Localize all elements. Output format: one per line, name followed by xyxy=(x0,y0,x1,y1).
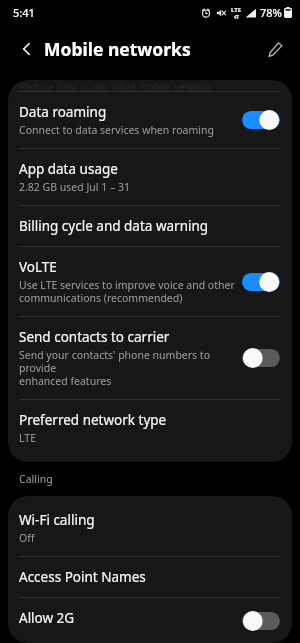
button[interactable]: Access Point Names xyxy=(8,557,292,597)
staticText: Mobile networks xyxy=(44,37,191,61)
staticText: Allow 2G xyxy=(19,609,75,627)
staticText: Data roaming xyxy=(19,103,107,121)
staticText: Send contacts to carrier xyxy=(19,328,170,346)
staticText: Billing cycle and data warning xyxy=(19,217,209,235)
button[interactable]: Data roaming xyxy=(8,92,292,148)
staticText: LTE xyxy=(19,431,36,445)
staticText: Reduce data usage while mobile network xyxy=(19,80,212,91)
button[interactable]: Off xyxy=(242,610,280,632)
staticText: Calling xyxy=(19,472,53,486)
staticText: LTE xyxy=(231,6,242,14)
staticText: Connect to data services when roaming xyxy=(19,123,214,137)
button[interactable]: On xyxy=(242,271,280,293)
staticText: VoLTE xyxy=(19,258,57,276)
button[interactable]: On xyxy=(242,109,280,131)
button[interactable]: Preferred network type xyxy=(8,400,292,456)
button[interactable]: Off xyxy=(242,347,280,369)
button[interactable]: Send contacts to carrier xyxy=(8,317,292,399)
staticText: Send your contacts' phone numbers to pro… xyxy=(19,348,242,388)
button[interactable]: VoLTE xyxy=(8,247,292,316)
staticText: 4T xyxy=(234,14,240,20)
button[interactable]: Billing cycle and data warning xyxy=(8,206,292,246)
button[interactable]: Reduce data usage while mobile network xyxy=(8,80,292,91)
staticText: 78% xyxy=(260,5,282,20)
button[interactable]: Allow 2G xyxy=(8,598,292,643)
staticText: 5:41 xyxy=(13,5,35,20)
staticText: Access Point Names xyxy=(19,568,146,586)
staticText: Preferred network type xyxy=(19,411,167,429)
staticText: Wi-Fi calling xyxy=(19,511,95,529)
button[interactable]: App data usage xyxy=(8,149,292,205)
staticText: Use LTE services to improve voice and ot… xyxy=(19,278,235,305)
staticText: 2.82 GB used Jul 1 – 31 xyxy=(19,180,130,194)
staticText: App data usage xyxy=(19,160,118,178)
button[interactable]: Edit xyxy=(260,34,290,64)
button[interactable]: Back xyxy=(12,34,42,64)
staticText: Off xyxy=(19,531,35,545)
button[interactable]: Wi-Fi calling xyxy=(8,500,292,556)
